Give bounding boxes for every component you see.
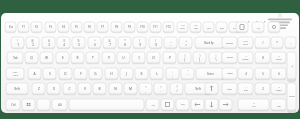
button[interactable]: 2 [255,83,270,94]
button[interactable]: 7 [238,52,253,63]
button[interactable]: O [147,52,160,63]
button[interactable]: Caps [6,68,24,79]
button[interactable]: ) [149,37,162,48]
button[interactable]: 1 [238,83,253,94]
button[interactable]: F12 [163,22,174,32]
button[interactable]: Enter [196,68,224,79]
button[interactable]: 4 [238,68,253,79]
button[interactable]: * [118,37,131,48]
button[interactable]: I [132,52,145,63]
button[interactable]: > [154,83,167,94]
button[interactable]: Backspace [195,37,223,48]
button[interactable]: End [222,83,237,94]
button[interactable]: % [72,37,85,48]
button[interactable]: Del [216,22,227,32]
button[interactable]: Z [32,83,45,94]
button[interactable]: - [285,37,296,48]
button[interactable]: F7 [97,22,108,32]
button[interactable]: Sys [190,22,201,32]
button[interactable]: . [271,99,286,110]
button[interactable]: PgUp [222,52,237,63]
button[interactable]: Windows key [22,99,35,110]
button[interactable]: F1 [18,22,29,32]
button[interactable]: Enter [287,83,296,110]
button[interactable]: + [287,52,296,79]
button[interactable]: A [28,68,41,79]
button[interactable]: F6 [84,22,95,32]
button[interactable]: U [117,52,130,63]
button[interactable]: F11 [150,22,161,32]
button[interactable]: { [178,52,191,63]
button[interactable]: T [86,52,99,63]
button[interactable]: + [179,37,192,48]
button[interactable]: : [166,68,179,79]
button[interactable]: J [120,68,133,79]
button[interactable]: } [193,52,206,63]
button[interactable]: X [47,83,60,94]
button[interactable]: F2 [31,22,42,32]
button[interactable]: F9 [124,22,135,32]
button[interactable]: F10 [137,22,148,32]
button[interactable]: F5 [71,22,82,32]
button[interactable]: Arrow down [205,99,218,110]
button[interactable]: C [63,83,76,94]
button[interactable]: S [43,68,56,79]
button[interactable]: V [78,83,91,94]
button[interactable]: F10 [229,22,240,32]
button[interactable]: Arrow up [205,83,218,94]
button[interactable]: @ [26,37,39,48]
button[interactable]: ( [133,37,146,48]
button[interactable]: F4 [58,22,69,32]
button[interactable]: ? [170,83,183,94]
button[interactable]: 5 [255,68,270,79]
button[interactable]: Space [69,99,144,110]
button[interactable]: Ctrl [6,99,20,110]
button[interactable]: D [59,68,72,79]
button[interactable]: Esc [5,22,16,32]
button[interactable]: Num [238,37,253,48]
button[interactable]: Alt [52,99,67,110]
button[interactable]: B [93,83,106,94]
button[interactable]: " [181,68,194,79]
button[interactable]: Calculator [236,22,248,32]
button[interactable]: _ [164,37,177,48]
button[interactable]: W [40,52,53,63]
button[interactable]: 0 [238,99,269,110]
button[interactable]: R [71,52,84,63]
button[interactable]: Ins [203,22,214,32]
button[interactable]: Alt [146,99,159,110]
button[interactable]: 3 [271,83,286,94]
button[interactable]: Arrow left [191,99,204,110]
button[interactable]: F [74,68,87,79]
button[interactable]: Ctrl [176,99,189,110]
button[interactable]: ! [11,37,24,48]
button[interactable]: H [105,68,118,79]
button[interactable]: K [135,68,148,79]
button[interactable]: 8 [255,52,270,63]
button[interactable]: Shift [6,83,28,94]
button[interactable]: N [109,83,122,94]
button[interactable]: Scrl [177,22,188,32]
button[interactable]: PgDn [222,68,237,79]
button[interactable]: 6 [271,68,286,79]
button[interactable]: < [139,83,152,94]
button[interactable]: F3 [45,22,56,32]
button[interactable]: Home [222,37,237,48]
button[interactable]: / [255,37,270,48]
button[interactable]: M [124,83,137,94]
button[interactable]: * [271,37,283,48]
button[interactable]: Fn [37,99,50,110]
button[interactable]: G [89,68,102,79]
button[interactable]: L [150,68,163,79]
button[interactable]: E [56,52,69,63]
button[interactable]: Menu [161,99,174,110]
button[interactable]: Tab [7,52,23,63]
button[interactable]: | [209,52,222,63]
button[interactable]: P [163,52,176,63]
button[interactable]: Shift [185,83,211,94]
button[interactable]: Q [25,52,38,63]
button[interactable]: ^ [88,37,101,48]
button[interactable]: & [103,37,116,48]
button[interactable]: 9 [271,52,286,63]
button[interactable]: F8 [111,22,122,32]
